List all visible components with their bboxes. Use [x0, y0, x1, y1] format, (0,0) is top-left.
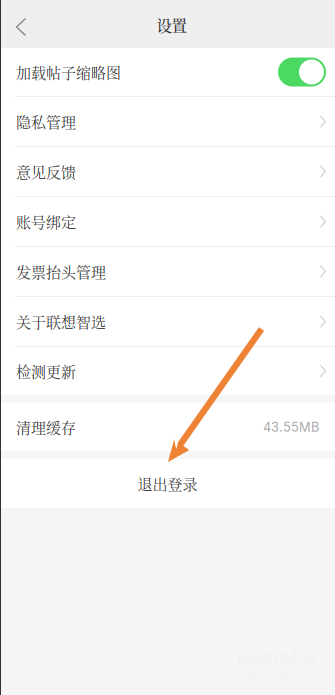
button[interactable]: 关于联想智选 — [0, 297, 335, 347]
staticText: 43.55MB — [263, 419, 319, 435]
button[interactable]: 检测更新 — [0, 347, 335, 395]
staticText: 账号绑定 — [16, 211, 76, 232]
button[interactable]: 清理缓存 — [0, 403, 335, 451]
button[interactable]: 账号绑定 — [0, 197, 335, 247]
staticText: 关于联想智选 — [16, 311, 106, 332]
button[interactable]: 加载帖子缩略图 — [0, 48, 335, 97]
staticText: 检测更新 — [16, 360, 76, 382]
button[interactable]: 返回 — [0, 0, 42, 48]
staticText: 加载帖子缩略图 — [16, 61, 121, 83]
staticText: 意见反馈 — [16, 161, 76, 182]
staticText: 清理缓存 — [16, 416, 76, 438]
staticText: 设置 — [156, 14, 186, 36]
staticText: 发票抬头管理 — [16, 261, 106, 282]
button[interactable]: 隐私管理 — [0, 97, 335, 147]
staticText: 隐私管理 — [16, 111, 76, 132]
button[interactable]: 意见反馈 — [0, 147, 335, 197]
staticText: 退出登录 — [137, 473, 197, 494]
button[interactable]: 退出登录 — [0, 459, 335, 508]
button[interactable]: 发票抬头管理 — [0, 247, 335, 297]
